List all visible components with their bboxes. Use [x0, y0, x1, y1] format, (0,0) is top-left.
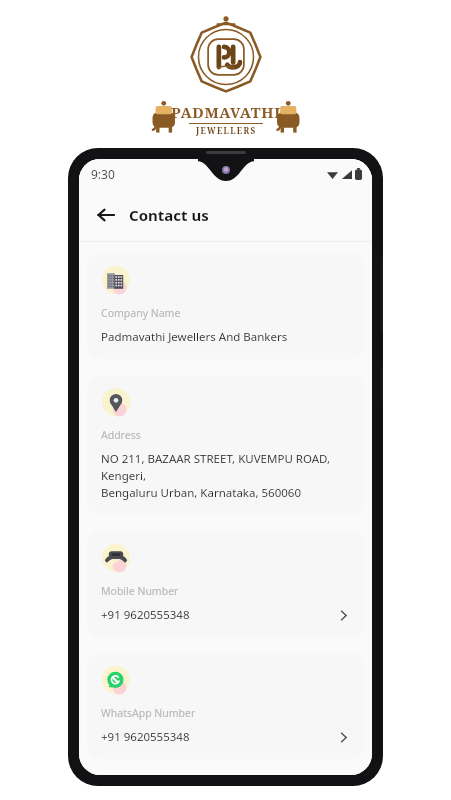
button[interactable]: Company Name: [87, 253, 364, 359]
staticText: 9:30: [91, 166, 115, 182]
staticText: Padmavathi Jewellers And Bankers: [101, 329, 288, 345]
staticText: WhatsApp Number: [101, 706, 196, 720]
button[interactable]: WhatsApp Number: [87, 653, 364, 759]
staticText: +91 9620555348: [101, 729, 190, 745]
staticText: Contact us: [129, 205, 209, 225]
button[interactable]: Back: [89, 198, 123, 232]
staticText: Address: [101, 428, 141, 442]
button[interactable]: Address: [87, 375, 364, 515]
staticText: JEWELLERS: [196, 125, 257, 136]
staticText: NO 211, BAZAAR STREET, KUVEMPU ROAD, Ken…: [101, 451, 350, 501]
staticText: Mobile Number: [101, 584, 179, 598]
staticText: PADMAVATHI: [171, 102, 281, 122]
staticText: Company Name: [101, 306, 181, 320]
staticText: +91 9620555348: [101, 607, 190, 623]
button[interactable]: Mobile Number: [87, 531, 364, 637]
